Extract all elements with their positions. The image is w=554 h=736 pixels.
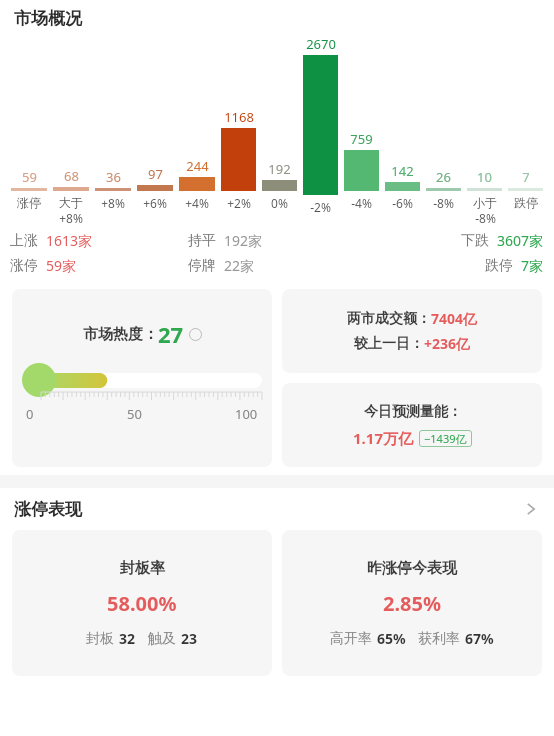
staticText: 持平 bbox=[188, 232, 216, 250]
staticText: 192家 bbox=[224, 231, 263, 250]
staticText: −1439亿 bbox=[424, 431, 467, 446]
staticText: +2% bbox=[227, 195, 251, 211]
staticText: 59家 bbox=[46, 256, 77, 275]
staticText: 27 bbox=[158, 319, 184, 349]
staticText: -6% bbox=[392, 195, 413, 211]
staticText: 2670 bbox=[306, 35, 336, 53]
button[interactable]: 涨停 bbox=[10, 256, 188, 275]
staticText: 244 bbox=[186, 157, 209, 175]
staticText: 2.85% bbox=[383, 590, 441, 617]
staticText: 下跌 bbox=[461, 232, 489, 250]
staticText: 36 bbox=[106, 168, 121, 186]
staticText: -8% bbox=[475, 210, 496, 225]
staticText: 封板 bbox=[86, 630, 114, 648]
staticText: 涨停表现 bbox=[14, 499, 82, 520]
button[interactable]: 持平 bbox=[188, 231, 366, 250]
button[interactable]: 两市成交额： bbox=[282, 289, 542, 373]
button[interactable]: 跌停 bbox=[366, 256, 544, 275]
staticText: 上涨 bbox=[10, 232, 38, 250]
staticText: +4% bbox=[185, 195, 209, 211]
staticText: +236亿 bbox=[424, 334, 471, 353]
staticText: 大于 bbox=[59, 195, 83, 210]
staticText: 封板率 bbox=[120, 559, 165, 578]
staticText: 67% bbox=[465, 629, 494, 648]
staticText: +8% bbox=[59, 210, 83, 225]
staticText: +8% bbox=[101, 195, 125, 211]
staticText: 停牌 bbox=[188, 257, 216, 275]
staticText: 涨停 bbox=[17, 195, 41, 210]
staticText: 获利率 bbox=[418, 630, 460, 648]
staticText: 3607家 bbox=[497, 231, 544, 250]
staticText: 涨停 bbox=[10, 257, 38, 275]
staticText: 10 bbox=[477, 168, 492, 186]
staticText: 0 bbox=[26, 405, 34, 423]
staticText: 跌停 bbox=[485, 257, 513, 275]
other: More bbox=[522, 500, 540, 518]
button[interactable]: 昨涨停今表现 bbox=[282, 530, 542, 676]
staticText: +6% bbox=[143, 195, 167, 211]
staticText: 两市成交额： bbox=[347, 310, 431, 328]
staticText: 市场概况 bbox=[14, 8, 82, 29]
button[interactable]: 停牌 bbox=[188, 256, 366, 275]
staticText: 23 bbox=[181, 629, 198, 648]
staticText: 142 bbox=[391, 162, 414, 180]
button[interactable]: 市场热度： bbox=[12, 289, 272, 467]
staticText: -8% bbox=[433, 195, 454, 211]
staticText: 小于 bbox=[473, 195, 497, 210]
button[interactable]: 下跌 bbox=[366, 231, 544, 250]
staticText: 较上一日： bbox=[354, 335, 424, 353]
staticText: 7家 bbox=[521, 256, 544, 275]
staticText: 32 bbox=[119, 629, 136, 648]
staticText: 今日预测量能： bbox=[364, 403, 462, 421]
staticText: 65% bbox=[377, 629, 406, 648]
staticText: 26 bbox=[436, 168, 451, 186]
staticText: 市场热度： bbox=[83, 325, 158, 344]
staticText: 昨涨停今表现 bbox=[367, 559, 457, 578]
button[interactable]: 今日预测量能： bbox=[282, 383, 542, 467]
staticText: 1168 bbox=[224, 108, 254, 126]
staticText: 1613家 bbox=[46, 231, 93, 250]
staticText: 跌停 bbox=[514, 195, 538, 210]
staticText: 759 bbox=[350, 130, 373, 148]
staticText: 22家 bbox=[224, 256, 255, 275]
staticText: 100 bbox=[235, 405, 258, 423]
staticText: 高开率 bbox=[330, 630, 372, 648]
other: Help bbox=[189, 328, 202, 341]
staticText: 7404亿 bbox=[431, 309, 478, 328]
staticText: 0% bbox=[271, 195, 288, 211]
staticText: 97 bbox=[148, 165, 163, 183]
staticText: -4% bbox=[351, 195, 372, 211]
staticText: 触及 bbox=[148, 630, 176, 648]
staticText: 59 bbox=[22, 168, 37, 186]
staticText: 192 bbox=[268, 160, 291, 178]
staticText: 7 bbox=[522, 168, 530, 186]
staticText: 58.00% bbox=[107, 590, 177, 617]
staticText: 50 bbox=[127, 405, 142, 423]
staticText: 68 bbox=[64, 167, 79, 185]
staticText: -2% bbox=[310, 199, 331, 215]
button[interactable]: 封板率 bbox=[12, 530, 272, 676]
staticText: 1.17万亿 bbox=[353, 428, 413, 448]
button[interactable]: 涨停表现 bbox=[0, 488, 554, 530]
button[interactable]: 上涨 bbox=[10, 231, 188, 250]
